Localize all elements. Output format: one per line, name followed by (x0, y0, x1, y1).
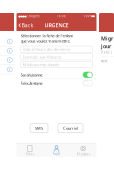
button[interactable]: Réglages (70, 144, 96, 157)
staticText: SMS (35, 125, 43, 131)
button[interactable]: Fiches (16, 144, 43, 157)
staticText: Réglages (77, 152, 90, 156)
staticText: Il y a 2 j (101, 50, 112, 54)
staticText: 16:06 (57, 14, 66, 18)
staticText: Back (21, 22, 33, 29)
staticText: Sarah-Jeanne (20, 72, 42, 77)
button[interactable]: Profil (43, 144, 70, 157)
staticText: jour (101, 43, 111, 50)
staticText: Date et heure des dernières (22, 46, 70, 52)
staticText: Médicaments donnés (22, 62, 59, 67)
staticText: Profil (52, 152, 60, 156)
staticText: Note (101, 59, 108, 63)
button[interactable]: Courriel (58, 124, 83, 133)
staticText: Migr (101, 35, 113, 42)
staticText: Courriel (63, 125, 78, 131)
staticText: Fiches (26, 152, 34, 156)
staticText: Exemple: aux 4 heures (22, 54, 61, 60)
button[interactable]: SMS (30, 124, 48, 133)
staticText: Sélectionner la fiche de l'enfant que vo… (20, 33, 72, 44)
staticText: URGENCE (44, 22, 68, 29)
staticText: ●●●●○ Rogers (18, 14, 39, 18)
button[interactable]: Back (16, 19, 36, 31)
staticText: Felix-Antoine (20, 80, 42, 86)
button[interactable]: Sarah-Jeanne (16, 71, 96, 79)
staticText: 100% (84, 14, 92, 18)
button[interactable]: Felix-Antoine (16, 79, 96, 87)
